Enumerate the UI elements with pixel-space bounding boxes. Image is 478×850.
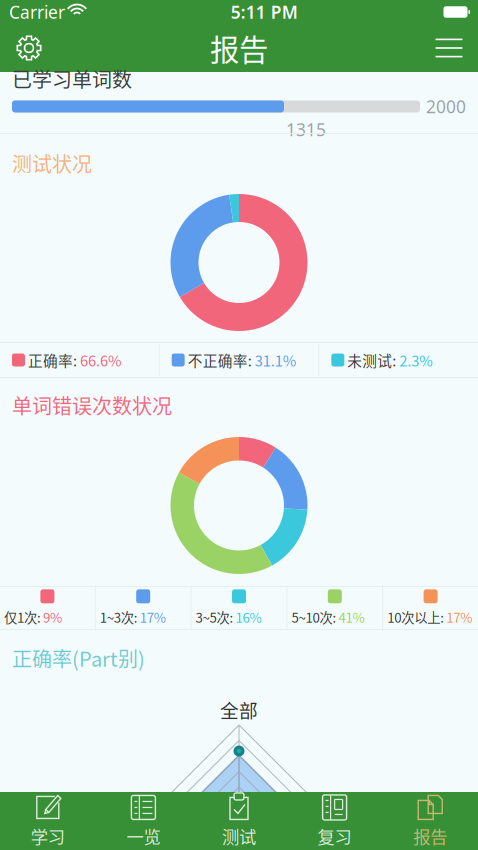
staticText: 5~10次: <box>291 607 336 627</box>
staticText: 5:11 PM <box>231 0 298 23</box>
button[interactable]: Menu <box>426 24 472 72</box>
staticText: 一览 <box>126 823 160 849</box>
staticText: 2000 <box>426 95 466 118</box>
staticText: 复习 <box>318 823 352 849</box>
staticText: 66.6% <box>80 349 122 371</box>
staticText: 已学习单词数 <box>12 64 132 93</box>
button[interactable]: 测试 <box>191 792 287 850</box>
staticText: Carrier <box>9 0 65 23</box>
staticText: 9% <box>43 607 62 627</box>
button[interactable]: 学习 <box>0 792 96 850</box>
staticText: 测试状况 <box>12 148 92 177</box>
staticText: 10次以上: <box>387 607 444 627</box>
staticText: 未测试: <box>347 349 396 371</box>
staticText: 3~5次: <box>196 607 234 627</box>
staticText: 学习 <box>31 823 65 849</box>
staticText: 17% <box>140 607 166 627</box>
staticText: 不正确率: <box>188 349 252 371</box>
staticText: 1~3次: <box>100 607 138 627</box>
staticText: 正确率(Part别) <box>12 643 145 672</box>
staticText: 2.3% <box>399 349 433 371</box>
button[interactable]: 复习 <box>287 792 382 850</box>
staticText: 17% <box>446 607 472 627</box>
staticText: 报告 <box>210 27 268 69</box>
staticText: 31.1% <box>255 349 297 371</box>
button[interactable]: Settings <box>6 24 52 72</box>
staticText: 全部 <box>220 696 258 723</box>
staticText: 测试 <box>222 823 256 849</box>
staticText: 报告 <box>413 823 447 849</box>
staticText: 41% <box>338 607 364 627</box>
button[interactable]: 一览 <box>96 792 191 850</box>
staticText: 1315 <box>286 118 326 141</box>
button[interactable]: 报告 <box>382 792 478 850</box>
staticText: 16% <box>236 607 262 627</box>
staticText: 单词错误次数状况 <box>12 390 172 419</box>
staticText: 仅1次: <box>4 607 41 627</box>
staticText: 正确率: <box>28 349 77 371</box>
